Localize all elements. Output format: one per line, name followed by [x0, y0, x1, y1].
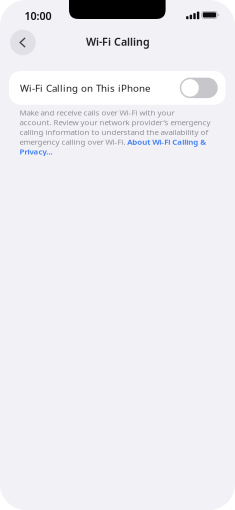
staticText: Wi-Fi Calling	[86, 34, 150, 49]
staticText: Make and receive calls over Wi-Fi with y…	[20, 107, 175, 118]
staticText: About Wi-Fi Calling &	[127, 136, 206, 147]
staticText: emergency calling over Wi-Fi.	[20, 136, 126, 147]
button[interactable]: Back	[10, 30, 36, 55]
staticText: calling information to understand the av…	[20, 127, 209, 137]
staticText: 10:00	[24, 8, 51, 23]
button[interactable]: Wi-Fi Calling on This iPhone	[9, 71, 226, 105]
staticText: Privacy...	[20, 146, 53, 157]
staticText: account. Review your network provider’s …	[20, 117, 211, 128]
staticText: Wi-Fi Calling on This iPhone	[20, 81, 150, 95]
